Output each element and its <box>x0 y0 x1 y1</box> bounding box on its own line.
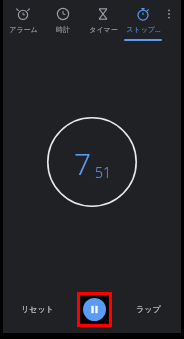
button[interactable]: アラーム <box>3 0 43 38</box>
button[interactable]: More options <box>161 6 177 22</box>
button[interactable]: リセット <box>17 300 58 318</box>
staticText: 51 <box>95 163 111 182</box>
staticText: 7 <box>74 143 92 184</box>
button[interactable]: ラップ <box>132 300 165 318</box>
staticText: ラップ <box>136 304 161 314</box>
staticText: リセット <box>21 304 54 314</box>
staticText: タイマー <box>89 25 118 34</box>
staticText: ストップ… <box>126 25 161 35</box>
staticText: アラーム <box>9 25 38 34</box>
staticText: 時計 <box>56 25 70 34</box>
button[interactable]: ストップ… <box>123 0 163 41</box>
button[interactable]: 時計 <box>43 0 83 38</box>
button[interactable]: タイマー <box>83 0 123 38</box>
button[interactable]: Pause <box>77 292 112 327</box>
